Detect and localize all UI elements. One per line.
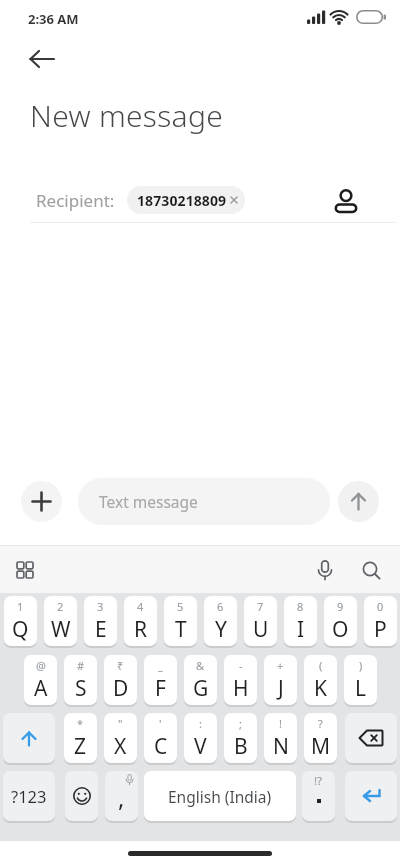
staticText: 1 — [17, 599, 24, 614]
staticText: Text message — [99, 491, 198, 512]
staticText: P — [374, 615, 387, 644]
button[interactable] — [21, 481, 62, 522]
staticText: English (India) — [168, 786, 272, 807]
staticText: Q — [12, 615, 29, 644]
button[interactable]: @ — [24, 655, 57, 705]
button[interactable]: !? — [302, 771, 335, 821]
button[interactable]: _ — [144, 655, 177, 705]
staticText: " — [118, 716, 123, 731]
staticText: V — [194, 732, 207, 761]
staticText: @ — [36, 658, 46, 673]
staticText: N — [273, 732, 289, 761]
button[interactable]: ? — [304, 713, 337, 763]
button[interactable]: ) — [344, 655, 377, 705]
staticText: X — [114, 732, 127, 761]
staticText: 5 — [177, 599, 184, 614]
button[interactable] — [3, 713, 55, 763]
staticText: + — [277, 658, 284, 673]
staticText: : — [199, 716, 202, 731]
button[interactable]: ! — [264, 713, 297, 763]
staticText: ? — [318, 716, 323, 731]
button[interactable] — [354, 553, 388, 587]
staticText: U — [253, 615, 269, 644]
button[interactable] — [345, 771, 397, 821]
staticText: _ — [158, 658, 163, 673]
staticText: 9 — [337, 599, 344, 614]
button[interactable]: ( — [304, 655, 337, 705]
staticText: E — [95, 615, 107, 644]
staticText: 8 — [297, 599, 304, 614]
staticText: L — [355, 674, 367, 703]
staticText: K — [314, 674, 327, 703]
button[interactable]: , — [105, 771, 138, 821]
button[interactable]: # — [64, 655, 97, 705]
button[interactable]: English (India) — [144, 771, 296, 821]
staticText: J — [278, 674, 284, 703]
staticText: Recipient: — [36, 189, 115, 212]
button[interactable]: ' — [144, 713, 177, 763]
button[interactable] — [65, 771, 98, 821]
button[interactable]: 2 — [44, 596, 77, 646]
staticText: # — [77, 658, 85, 673]
staticText: 4 — [137, 599, 144, 614]
staticText: ; — [239, 716, 242, 731]
staticText: ! — [279, 716, 282, 731]
button[interactable] — [338, 481, 379, 522]
staticText: 0 — [377, 599, 384, 614]
staticText: C — [154, 732, 168, 761]
button[interactable]: 3 — [84, 596, 117, 646]
staticText: ( — [319, 658, 323, 673]
staticText: T — [175, 615, 187, 644]
button[interactable]: 1 — [4, 596, 37, 646]
staticText: M — [311, 732, 331, 761]
button[interactable]: " — [104, 713, 137, 763]
button[interactable]: 8 — [284, 596, 317, 646]
staticText: ) — [359, 658, 363, 673]
button[interactable]: - — [224, 655, 257, 705]
staticText: !? — [314, 773, 323, 789]
button[interactable]: & — [184, 655, 217, 705]
staticText: W — [51, 615, 71, 644]
button[interactable] — [20, 42, 64, 76]
staticText: , — [118, 781, 125, 814]
staticText: - — [239, 658, 243, 673]
staticText: O — [332, 615, 349, 644]
staticText: 6 — [217, 599, 224, 614]
staticText: D — [113, 674, 129, 703]
button[interactable]: + — [264, 655, 297, 705]
button[interactable] — [308, 553, 342, 587]
button[interactable]: Text message — [78, 478, 330, 525]
staticText: * — [77, 716, 84, 731]
staticText: ₹ — [117, 658, 124, 673]
staticText: ?123 — [11, 785, 47, 807]
staticText: 2:36 AM — [28, 10, 79, 28]
button[interactable]: 4 — [124, 596, 157, 646]
button[interactable]: 9 — [324, 596, 357, 646]
staticText: R — [134, 615, 148, 644]
staticText: 18730218809 — [137, 191, 227, 210]
staticText: 7 — [257, 599, 264, 614]
button[interactable]: ?123 — [3, 771, 55, 821]
button[interactable]: * — [64, 713, 97, 763]
button[interactable]: 6 — [204, 596, 237, 646]
button[interactable] — [326, 180, 366, 220]
staticText: I — [297, 615, 305, 644]
button[interactable] — [8, 553, 42, 587]
button[interactable]: 5 — [164, 596, 197, 646]
button[interactable]: 7 — [244, 596, 277, 646]
staticText: & — [196, 658, 205, 673]
button[interactable] — [345, 713, 397, 763]
button[interactable]: 18730218809 — [127, 186, 245, 214]
button[interactable]: 0 — [364, 596, 397, 646]
staticText: S — [75, 674, 87, 703]
staticText: New message — [30, 95, 224, 136]
button[interactable]: ; — [224, 713, 257, 763]
staticText: Z — [74, 732, 87, 761]
staticText: G — [193, 674, 209, 703]
button[interactable]: : — [184, 713, 217, 763]
button[interactable]: ₹ — [104, 655, 137, 705]
staticText: 3 — [97, 599, 104, 614]
staticText: B — [234, 732, 248, 761]
staticText: 2 — [57, 599, 64, 614]
staticText: A — [34, 674, 48, 703]
